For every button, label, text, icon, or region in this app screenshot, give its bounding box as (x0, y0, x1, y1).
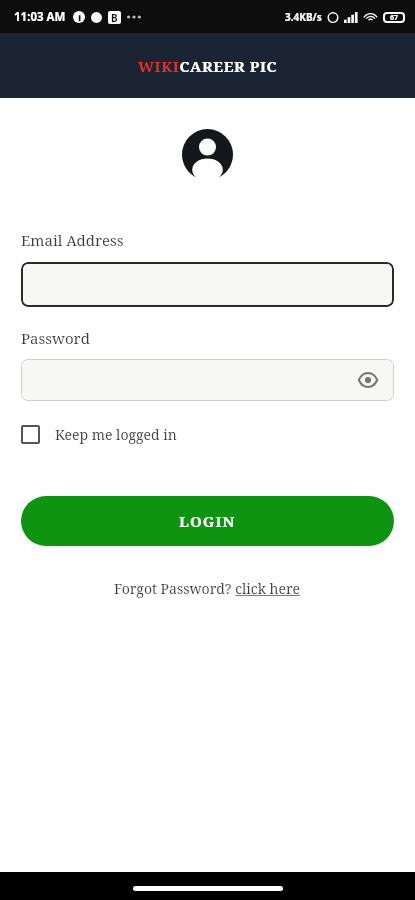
button[interactable]: Show password (21, 359, 394, 401)
staticText: 67 (390, 13, 399, 23)
button[interactable]: LOGIN (21, 496, 394, 546)
staticText: 3.4KB/s (285, 10, 322, 24)
staticText: 11:03 AM (14, 9, 66, 25)
button[interactable]: Keep me logged in (21, 425, 177, 444)
staticText: WIKICAREER PIC (138, 56, 278, 76)
staticText: Email Address (21, 230, 124, 250)
staticText: LOGIN (179, 511, 236, 531)
button[interactable]: Forgot Password? click here (114, 579, 301, 598)
button[interactable]: Show password (352, 364, 384, 396)
staticText: Password (21, 328, 90, 348)
button[interactable] (21, 262, 394, 307)
staticText: Forgot Password? click here (114, 579, 301, 598)
staticText: Keep me logged in (55, 425, 177, 444)
staticText: B (111, 11, 118, 24)
